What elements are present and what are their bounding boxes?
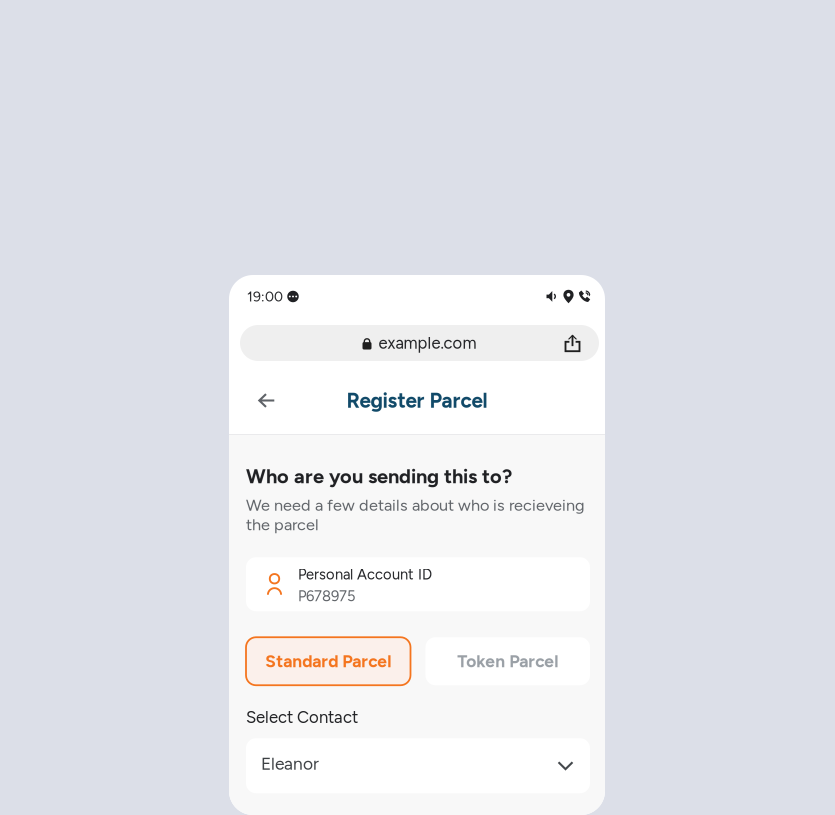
staticText: Token Parcel: [457, 651, 558, 672]
staticText: 19:00: [247, 288, 283, 305]
staticText: P678975: [298, 587, 355, 605]
staticText: Register Parcel: [346, 388, 487, 413]
staticText: example.com: [378, 333, 476, 353]
staticText: Standard Parcel: [265, 651, 391, 672]
staticText: Who are you sending this to?: [246, 464, 512, 488]
button[interactable]: Token Parcel: [425, 637, 590, 685]
button[interactable]: Standard Parcel: [246, 637, 410, 685]
button[interactable]: Back: [229, 373, 289, 422]
staticText: Eleanor: [261, 753, 319, 774]
button[interactable]: Personal Account ID: [246, 557, 590, 611]
staticText: Select Contact: [246, 707, 358, 727]
button[interactable]: Eleanor: [246, 738, 590, 793]
staticText: Personal Account ID: [298, 566, 432, 583]
staticText: We need a few details about who is recie…: [246, 495, 585, 534]
button[interactable]: Share: [555, 325, 599, 360]
